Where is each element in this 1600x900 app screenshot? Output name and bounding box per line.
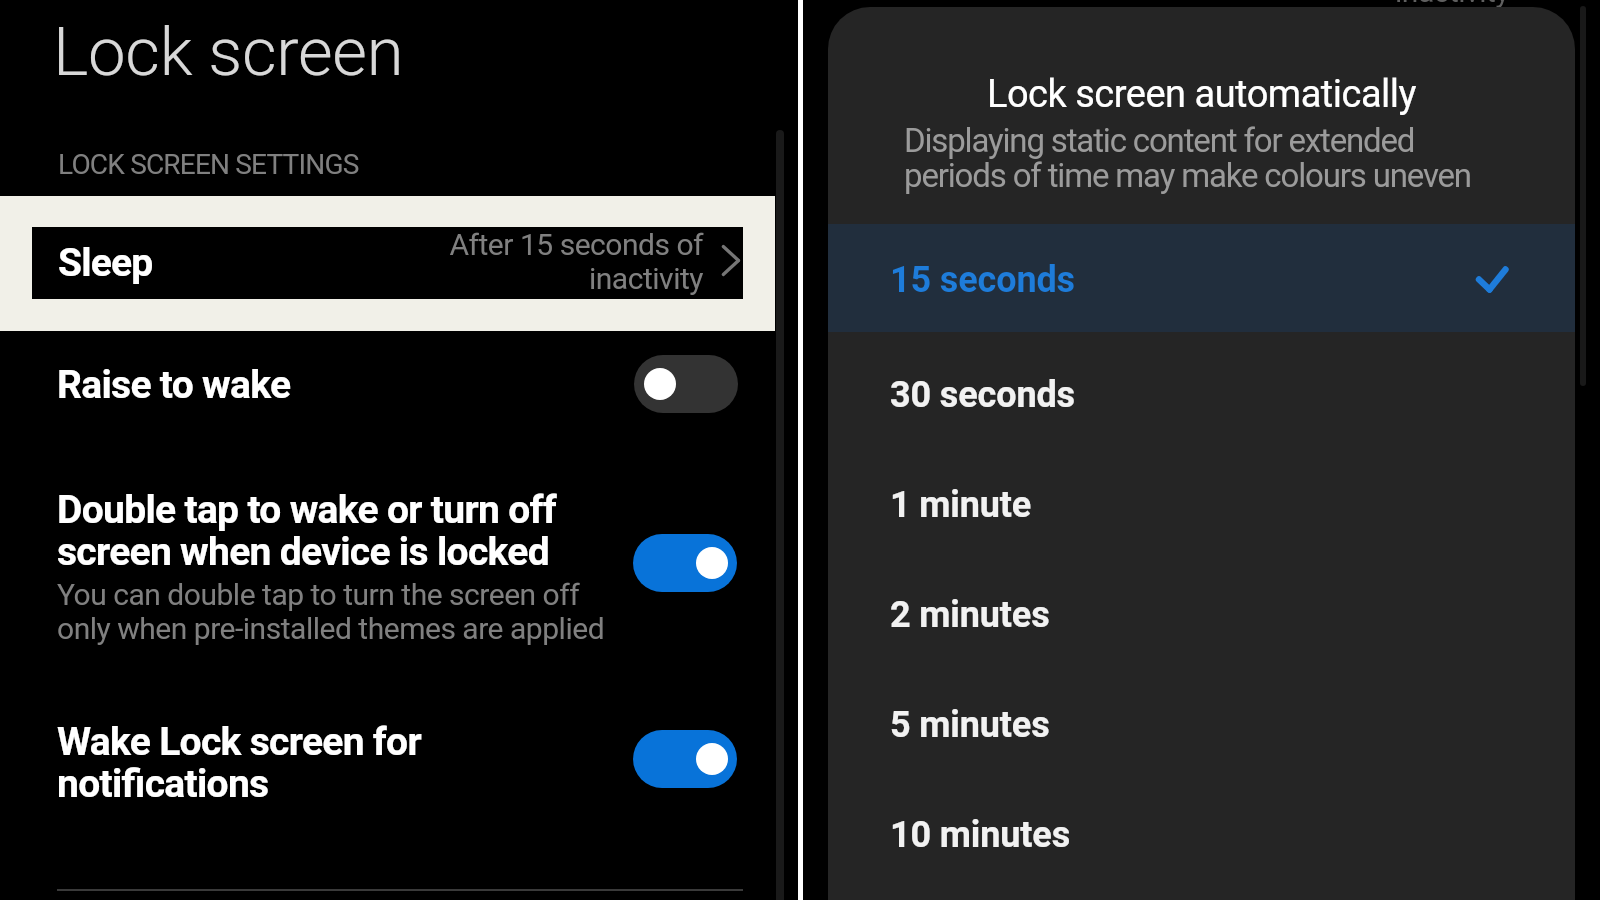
staticText: You can double tap to turn the screen of… — [57, 577, 677, 646]
button[interactable]: Raise to wake — [634, 355, 738, 413]
button[interactable]: Wake Lock screen for notifications — [633, 730, 737, 788]
staticText: Lock screen — [53, 13, 404, 92]
staticText: 10 minutes — [890, 814, 1071, 856]
staticText: Sleep — [58, 240, 153, 286]
button[interactable]: 15 seconds — [828, 224, 1575, 332]
staticText: Wake Lock screen for notifications — [57, 719, 657, 807]
button[interactable]: 10 minutes — [828, 772, 1575, 882]
staticText: 30 seconds — [890, 374, 1075, 416]
staticText: Raise to wake — [57, 362, 291, 408]
staticText: Lock screen automatically — [828, 72, 1575, 117]
staticText: inactivity — [1395, 0, 1510, 9]
button[interactable]: 1 minute — [828, 442, 1575, 552]
staticText: 5 minutes — [890, 704, 1050, 746]
staticText: Displaying static content for extended p… — [904, 121, 1504, 195]
staticText: After 15 seconds of inactivity — [449, 227, 703, 296]
button[interactable]: 2 minutes — [828, 552, 1575, 662]
button[interactable]: 30 seconds — [828, 332, 1575, 442]
button[interactable]: 5 minutes — [828, 662, 1575, 772]
staticText: 2 minutes — [890, 594, 1050, 636]
button[interactable]: Sleep — [32, 227, 743, 299]
button[interactable]: Double tap to wake — [633, 534, 737, 592]
other: Open sleep timeout options — [720, 243, 744, 277]
other: Selected — [1475, 265, 1515, 305]
staticText: Double tap to wake or turn off screen wh… — [57, 487, 657, 575]
staticText: LOCK SCREEN SETTINGS — [58, 148, 359, 181]
staticText: 15 seconds — [890, 259, 1075, 301]
staticText: 1 minute — [890, 484, 1032, 526]
